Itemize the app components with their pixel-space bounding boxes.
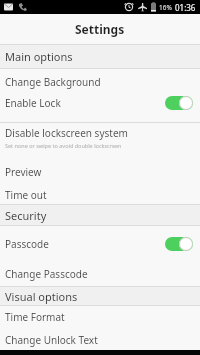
staticText: Time Format [5, 310, 65, 324]
button[interactable]: Time out [0, 184, 200, 206]
staticText: Time out [5, 188, 47, 202]
staticText: Disable lockscreen system [5, 126, 128, 140]
staticText: Visual options [5, 289, 78, 304]
button[interactable]: Change Passcode [0, 262, 200, 286]
staticText: Change Passcode [5, 267, 88, 281]
button[interactable]: Change Background [0, 70, 200, 94]
button[interactable]: Disable lockscreen system [0, 123, 200, 153]
staticText: Passcode [5, 237, 49, 251]
button[interactable]: Passcode [0, 232, 200, 256]
staticText: 01:36 [175, 2, 196, 13]
staticText: Security [5, 208, 47, 223]
button[interactable]: Enable Lock [0, 91, 200, 115]
staticText: Enable Lock [5, 96, 61, 110]
staticText: Settings [75, 21, 125, 37]
staticText: 16% [159, 3, 172, 12]
button[interactable]: Preview [0, 160, 200, 184]
staticText: Set none or swipe to avoid double locksc… [5, 142, 122, 149]
staticText: Change Unlock Text [5, 333, 98, 347]
button[interactable]: Time Format [0, 306, 200, 328]
button[interactable]: Change Unlock Text [0, 328, 200, 351]
staticText: Main options [5, 49, 73, 64]
staticText: Change Background [5, 75, 101, 89]
staticText: Preview [5, 165, 42, 179]
